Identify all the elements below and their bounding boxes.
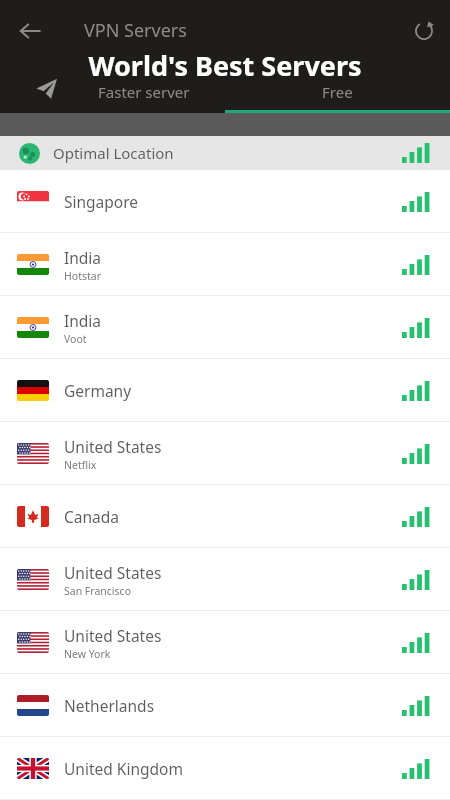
staticText: San Francisco [64,584,132,598]
button[interactable]: India [0,296,450,359]
staticText: Optimal Location [53,143,174,163]
button[interactable]: Singapore [0,170,450,233]
button[interactable]: Faster server [62,76,225,110]
button[interactable]: Refresh [406,13,442,49]
staticText: Voot [64,332,87,346]
staticText: Hotstar [64,269,101,283]
button[interactable]: Germany [0,359,450,422]
staticText: Netherlands [64,695,155,716]
staticText: Singapore [64,191,139,212]
staticText: Netflix [64,458,97,472]
button[interactable]: Canada [0,485,450,548]
staticText: World's Best Servers [0,47,450,84]
staticText: United States [64,436,162,457]
button[interactable]: United States [0,611,450,674]
staticText: United States [64,625,162,646]
button[interactable]: Free [225,76,450,110]
staticText: Germany [64,380,132,401]
staticText: India [64,310,102,331]
button[interactable]: Back [12,13,48,49]
staticText: United Kingdom [64,758,183,779]
button[interactable]: Netherlands [0,674,450,737]
staticText: Canada [64,506,119,527]
staticText: Free [322,82,353,102]
button[interactable]: Send [30,72,62,104]
button[interactable]: United States [0,422,450,485]
staticText: Faster server [98,82,190,102]
staticText: India [64,247,102,268]
button[interactable]: India [0,233,450,296]
button[interactable]: Optimal Location [0,136,450,170]
button[interactable]: United States [0,548,450,611]
staticText: VPN Servers [84,18,187,43]
staticText: New York [64,647,111,661]
button[interactable]: United Kingdom [0,737,450,800]
staticText: United States [64,562,162,583]
